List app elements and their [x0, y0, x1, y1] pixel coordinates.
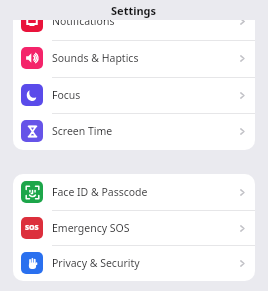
button[interactable]: Screen Time	[13, 113, 255, 149]
button[interactable]: SOS	[13, 210, 255, 246]
staticText: Privacy & Security	[52, 256, 140, 270]
staticText: SOS	[25, 223, 39, 233]
button[interactable]: Privacy & Security	[13, 245, 255, 281]
button[interactable]: Notifications	[13, 3, 255, 39]
staticText: Notifications	[52, 14, 115, 28]
button[interactable]: Focus	[13, 77, 255, 113]
staticText: Emergency SOS	[52, 221, 130, 235]
button[interactable]: Face ID & Passcode	[13, 174, 255, 210]
staticText: Focus	[52, 88, 81, 102]
staticText: Face ID & Passcode	[52, 185, 148, 199]
staticText: Screen Time	[52, 124, 113, 138]
staticText: Sounds & Haptics	[52, 51, 139, 65]
staticText: Settings	[111, 3, 157, 18]
button[interactable]: Sounds & Haptics	[13, 40, 255, 76]
